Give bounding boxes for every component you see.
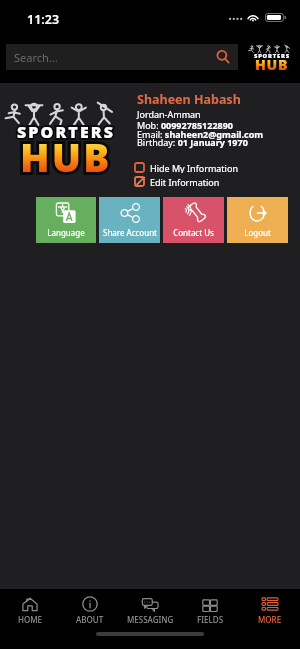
button[interactable]: Search: [208, 44, 238, 70]
staticText: Logout: [244, 227, 271, 238]
staticText: SPORTERS: [17, 121, 116, 143]
staticText: 11:23: [27, 11, 60, 28]
staticText: Mob: 00992785122890: [137, 119, 233, 131]
staticText: Share Account: [103, 227, 157, 238]
button[interactable]: Language: [36, 197, 96, 243]
staticText: Jordan-Amman: [137, 108, 201, 120]
staticText: Shaheen Habash: [137, 91, 241, 108]
button[interactable]: MORE: [240, 589, 300, 631]
button[interactable]: FIELDS: [180, 589, 240, 631]
staticText: HUB: [20, 131, 112, 184]
staticText: Search...: [14, 50, 208, 65]
staticText: SPORTERS: [254, 52, 290, 60]
button[interactable]: Sporters Hub: [246, 44, 298, 70]
button[interactable]: Contact Us: [163, 197, 224, 243]
staticText: Email: shaheen2@gmail.com: [137, 128, 264, 140]
button[interactable]: Share Account: [99, 197, 160, 243]
staticText: HUB: [255, 55, 289, 74]
staticText: MORE: [258, 614, 282, 625]
staticText: Contact Us: [173, 227, 214, 238]
button[interactable]: Edit Information: [135, 176, 220, 187]
button[interactable]: HOME: [0, 589, 60, 631]
staticText: Hide My Information: [150, 162, 238, 173]
staticText: FIELDS: [197, 614, 224, 625]
staticText: HUB: [20, 131, 112, 184]
staticText: ABOUT: [76, 614, 104, 625]
staticText: Language: [47, 227, 85, 238]
button[interactable]: Logout: [227, 197, 288, 243]
staticText: MESSAGING: [127, 614, 174, 625]
staticText: SPORTERS: [254, 52, 290, 60]
button[interactable]: Hide My Information: [135, 162, 238, 173]
staticText: SPORTERS: [17, 121, 116, 143]
button[interactable]: Search...: [6, 44, 238, 70]
button[interactable]: MESSAGING: [120, 589, 180, 631]
staticText: Edit Information: [150, 176, 220, 187]
staticText: HUB: [255, 55, 289, 74]
button[interactable]: ABOUT: [60, 589, 120, 631]
staticText: HOME: [18, 614, 43, 625]
staticText: Birthday: 01 January 1970: [137, 136, 248, 148]
